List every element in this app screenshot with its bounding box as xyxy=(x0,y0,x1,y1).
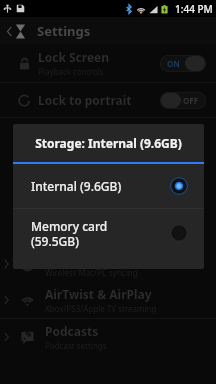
button[interactable]: Memory card (59.5GB) xyxy=(13,209,204,257)
staticText: ON xyxy=(167,58,180,69)
staticText: Internal (9.6GB) xyxy=(31,178,170,194)
staticText: Playback controls xyxy=(38,66,104,77)
staticText: Settings xyxy=(37,22,91,40)
staticText: Wireless Mac/PC syncing xyxy=(45,267,138,278)
staticText: AirTwist & AirPlay xyxy=(45,286,152,302)
button[interactable]: AirSync xyxy=(0,246,216,282)
staticText: Podcast settings xyxy=(45,340,107,351)
staticText: 1:44 PM xyxy=(175,2,213,16)
staticText: Podcasts xyxy=(45,323,99,339)
button[interactable]: Lock to portrait xyxy=(0,83,216,117)
button[interactable]: Off xyxy=(160,92,206,109)
staticText: Lock to portrait xyxy=(38,92,132,108)
button[interactable]: Podcasts xyxy=(0,319,216,355)
staticText: Xbox/PS3/Apple TV streaming xyxy=(45,303,157,314)
staticText: OFF xyxy=(183,95,199,106)
button[interactable]: Lock Screen xyxy=(0,44,216,82)
staticText: Storage: Internal (9.6GB) xyxy=(35,135,182,151)
button[interactable]: On xyxy=(160,55,206,72)
staticText: Memory card (59.5GB) xyxy=(31,218,170,249)
button[interactable]: AirTwist & AirPlay xyxy=(0,282,216,318)
button[interactable]: Internal (9.6GB) xyxy=(13,164,204,208)
button[interactable]: Back xyxy=(5,20,27,42)
staticText: Lock Screen xyxy=(38,49,110,65)
